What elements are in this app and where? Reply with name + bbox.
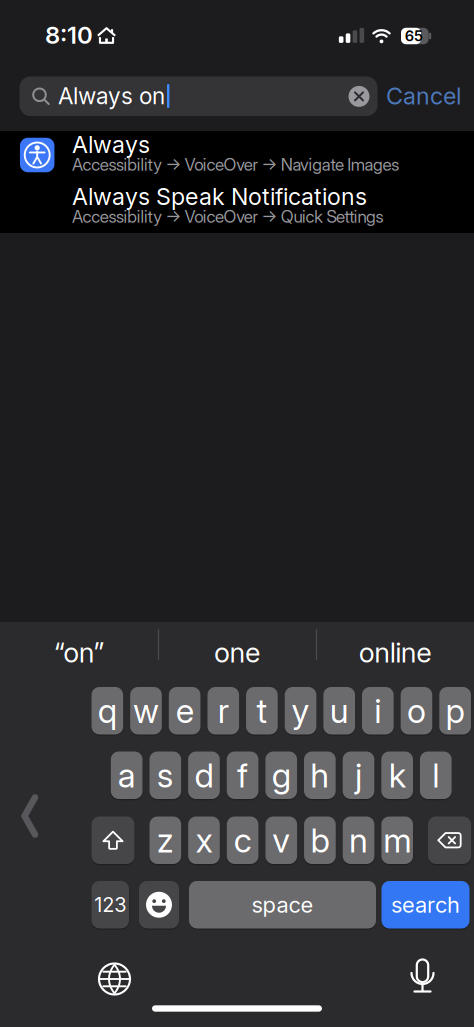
button[interactable]: Emoji <box>139 881 179 928</box>
button[interactable]: q <box>91 687 123 734</box>
staticText: c <box>234 820 252 860</box>
button[interactable]: h <box>304 751 336 799</box>
staticText: Accessibility → VoiceOver → Quick Settin… <box>72 206 384 227</box>
staticText: space <box>251 891 313 918</box>
staticText: Cancel <box>386 82 461 110</box>
staticText: Accessibility → VoiceOver → Navigate Ima… <box>72 154 399 175</box>
button[interactable]: o <box>401 687 432 734</box>
button[interactable]: Clear text <box>348 86 369 107</box>
button[interactable]: Shift <box>91 816 134 864</box>
staticText: w <box>133 691 159 731</box>
staticText: online <box>359 636 431 669</box>
button[interactable]: Numbers <box>91 881 129 928</box>
button[interactable]: c <box>227 816 258 864</box>
staticText: b <box>310 820 329 860</box>
staticText: s <box>157 755 174 795</box>
button[interactable]: Cancel <box>386 82 461 110</box>
staticText: 8:10 <box>45 20 93 49</box>
button[interactable]: Next keyboard <box>99 963 130 994</box>
staticText: m <box>383 820 411 860</box>
button[interactable]: Search <box>381 881 469 928</box>
staticText: “on” <box>54 636 104 669</box>
staticText: n <box>349 820 368 860</box>
button[interactable]: g <box>265 751 297 799</box>
button[interactable]: Always <box>0 131 474 182</box>
staticText: Always on <box>58 82 165 110</box>
staticText: f <box>237 755 248 795</box>
staticText: Always <box>72 130 150 159</box>
staticText: j <box>355 755 362 795</box>
button[interactable]: b <box>304 816 336 864</box>
staticText: z <box>157 820 174 860</box>
staticText: i <box>374 691 381 731</box>
button[interactable]: Search <box>19 76 377 116</box>
button[interactable]: a <box>111 751 142 799</box>
button[interactable]: p <box>439 687 471 734</box>
staticText: v <box>272 820 290 860</box>
button[interactable]: Delete <box>428 816 471 864</box>
button[interactable]: m <box>381 816 413 864</box>
button[interactable]: r <box>207 687 239 734</box>
staticText: Always Speak Notifications <box>72 182 367 211</box>
staticText: search <box>391 891 460 918</box>
staticText: y <box>292 691 310 731</box>
button[interactable]: j <box>343 751 374 799</box>
button[interactable]: e <box>169 687 200 734</box>
staticText: x <box>195 820 212 860</box>
staticText: u <box>330 691 349 731</box>
staticText: a <box>118 755 136 795</box>
button[interactable]: i <box>362 687 394 734</box>
staticText: q <box>98 691 117 731</box>
button[interactable]: u <box>323 687 355 734</box>
button[interactable]: w <box>130 687 162 734</box>
staticText: k <box>389 755 406 795</box>
staticText: 65 <box>405 27 423 45</box>
staticText: l <box>432 755 439 795</box>
staticText: r <box>218 691 229 731</box>
button[interactable]: d <box>188 751 220 799</box>
button[interactable]: n <box>343 816 374 864</box>
staticText: g <box>272 755 291 795</box>
button[interactable]: s <box>149 751 181 799</box>
button[interactable]: f <box>227 751 258 799</box>
staticText: one <box>214 636 260 669</box>
button[interactable]: online <box>320 628 470 676</box>
button[interactable]: v <box>265 816 297 864</box>
staticText: h <box>310 755 329 795</box>
button[interactable]: z <box>149 816 181 864</box>
staticText: p <box>446 691 465 731</box>
button[interactable]: x <box>188 816 220 864</box>
staticText: o <box>407 691 426 731</box>
staticText: t <box>256 691 267 731</box>
button[interactable]: l <box>420 751 452 799</box>
button[interactable]: y <box>285 687 316 734</box>
staticText: e <box>176 691 194 731</box>
staticText: d <box>194 755 213 795</box>
button[interactable]: k <box>381 751 413 799</box>
button[interactable]: “on” <box>4 628 154 676</box>
button[interactable]: one <box>162 628 312 676</box>
button[interactable]: Dictation <box>406 959 439 993</box>
button[interactable]: Expand keyboard <box>21 795 38 837</box>
staticText: 123 <box>94 893 126 917</box>
button[interactable]: Space <box>189 881 376 928</box>
button[interactable]: Always Speak Notifications <box>0 182 474 233</box>
button[interactable]: t <box>246 687 278 734</box>
